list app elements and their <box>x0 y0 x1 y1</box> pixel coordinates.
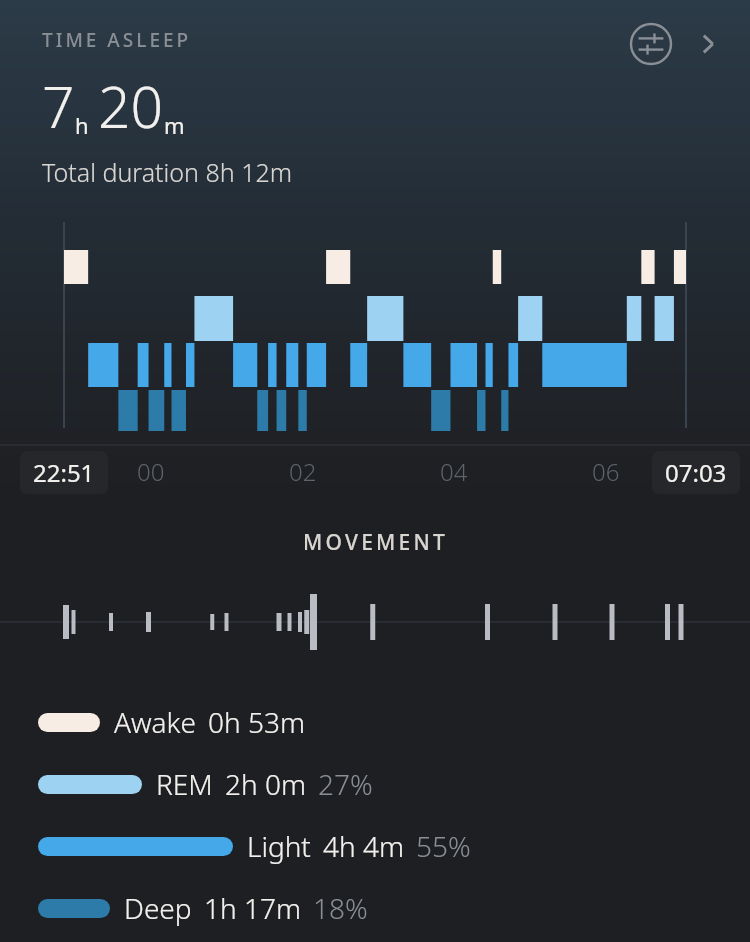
button[interactable]: Awake <box>0 702 750 742</box>
staticText: 06 <box>592 455 620 488</box>
staticText: 55% <box>416 827 471 865</box>
button[interactable]: Adjust sleep settings <box>627 20 675 68</box>
button[interactable]: 22:51 <box>20 451 108 494</box>
staticText: 04 <box>440 455 468 488</box>
staticText: 0h 53m <box>208 703 305 741</box>
staticText: REM <box>156 765 213 803</box>
staticText: 02 <box>289 455 317 488</box>
staticText: 4h 4m <box>323 827 404 865</box>
staticText: Light <box>247 827 311 865</box>
staticText: Total duration 8h 12m <box>42 155 293 189</box>
staticText: 1h 17m <box>204 889 301 927</box>
staticText: Deep <box>124 889 192 927</box>
staticText: h <box>75 110 89 140</box>
staticText: m <box>164 110 185 140</box>
staticText: 7 <box>42 67 75 145</box>
staticText: MOVEMENT <box>303 528 448 557</box>
button[interactable]: Deep <box>0 888 750 928</box>
staticText: 18% <box>313 889 368 927</box>
staticText: 2h 0m <box>225 765 306 803</box>
staticText: 22:51 <box>33 456 95 489</box>
staticText: 07:03 <box>665 456 727 489</box>
staticText: Awake <box>114 703 196 741</box>
button[interactable]: Open details <box>684 20 732 68</box>
staticText: 27% <box>318 765 373 803</box>
button[interactable]: REM <box>0 764 750 804</box>
button[interactable]: Light <box>0 826 750 866</box>
button[interactable]: 07:03 <box>652 451 740 494</box>
staticText: 00 <box>137 455 165 488</box>
staticText: TIME ASLEEP <box>42 27 192 53</box>
staticText: 20 <box>98 67 164 145</box>
